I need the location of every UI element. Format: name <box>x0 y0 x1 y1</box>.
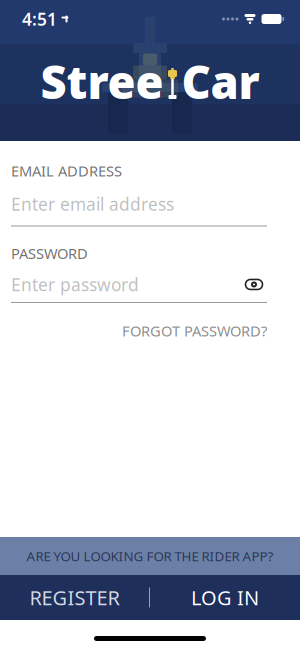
staticText: REGISTER <box>29 584 119 611</box>
staticText: LOG IN <box>191 584 259 611</box>
staticText: ARE YOU LOOKING FOR THE RIDER APP? <box>26 547 273 565</box>
staticText: FORGOT PASSWORD? <box>122 321 267 340</box>
staticText: PASSWORD <box>11 243 88 263</box>
staticText: Stree <box>40 51 163 112</box>
button[interactable]: REGISTER <box>0 575 149 620</box>
button[interactable]: FORGOT PASSWORD? <box>122 315 267 346</box>
staticText: Enter password <box>11 273 139 296</box>
button[interactable]: LOG IN <box>150 575 300 620</box>
staticText: Enter email address <box>11 192 174 215</box>
staticText: 4:51 <box>22 7 57 30</box>
staticText: EMAIL ADDRESS <box>11 161 122 180</box>
button[interactable]: Show password <box>241 274 267 294</box>
button[interactable]: ARE YOU LOOKING FOR THE RIDER APP? <box>0 537 300 575</box>
staticText: Car <box>181 51 259 112</box>
